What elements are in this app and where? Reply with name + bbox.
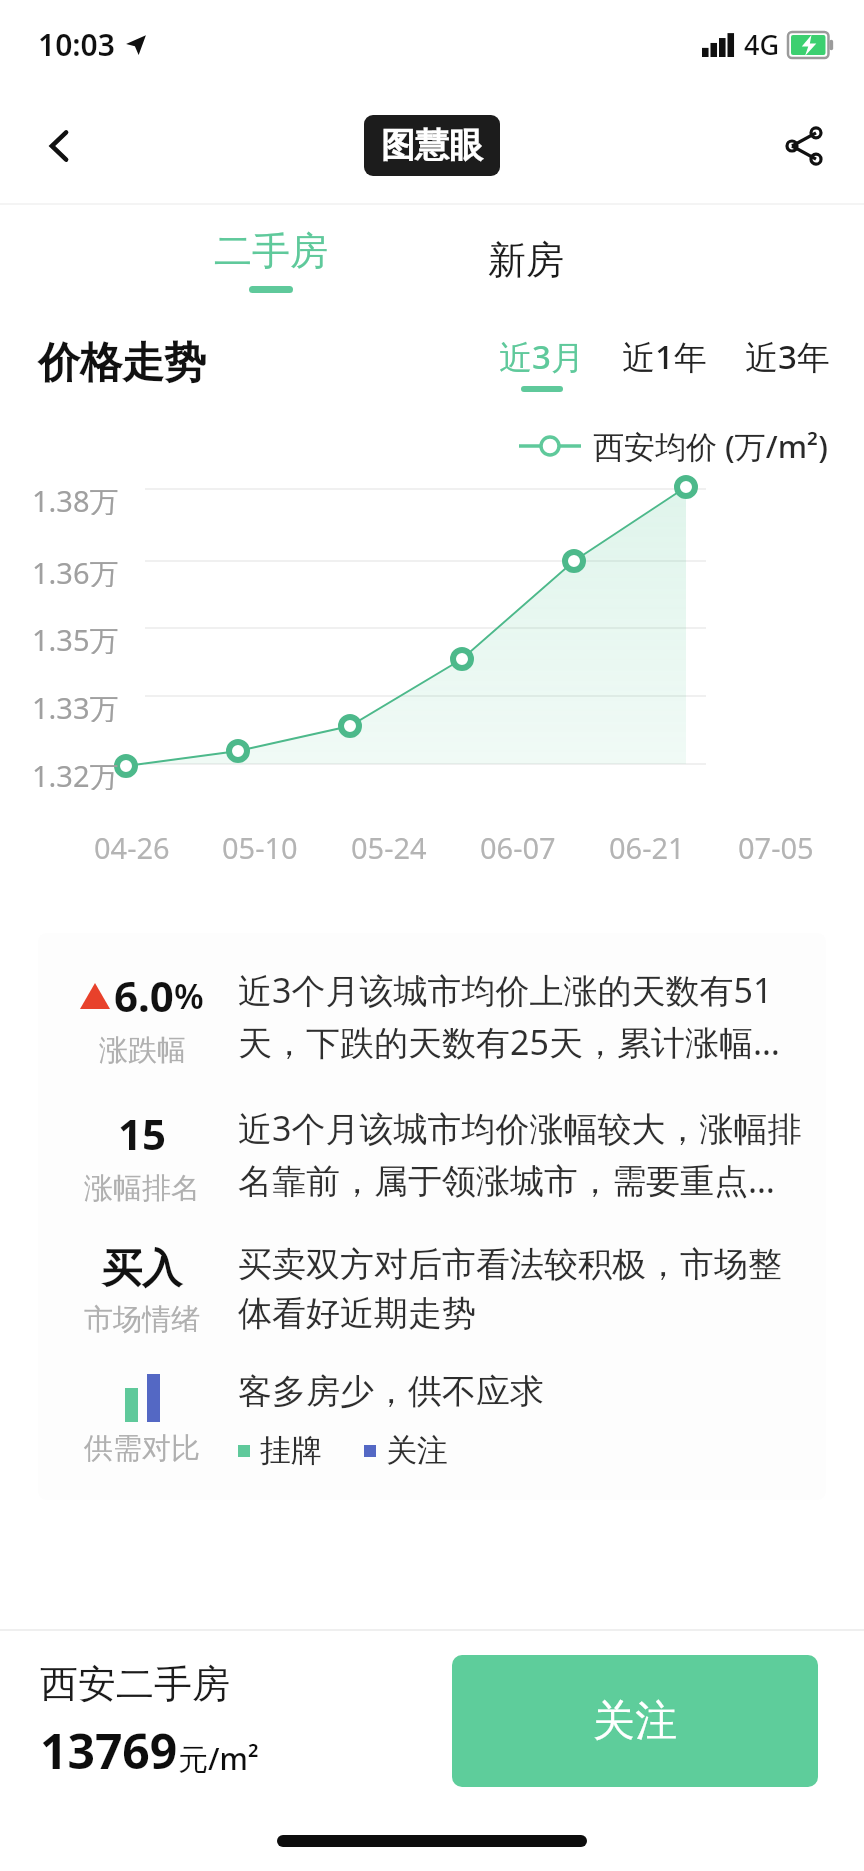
button[interactable]: Back [22, 108, 98, 184]
staticText: 04-26 [94, 828, 170, 867]
staticText: 06-07 [480, 828, 556, 867]
staticText: 6.0 [114, 967, 174, 1024]
staticText: 西安均价 (万/m²) [593, 425, 828, 467]
button[interactable]: 关注 [452, 1655, 818, 1787]
staticText: 客多房少，供不应求 [238, 1370, 544, 1413]
staticText: 近3月 [499, 334, 584, 379]
staticText: 关注 [593, 1695, 677, 1748]
button[interactable]: 图慧眼 [381, 124, 483, 167]
button[interactable]: 新房 [474, 230, 578, 290]
staticText: 涨跌幅 [99, 1032, 186, 1069]
staticText: 1.36万 [32, 553, 119, 587]
button[interactable]: 6.0 [54, 963, 810, 1069]
staticText: % [174, 973, 204, 1019]
staticText: 涨幅排名 [84, 1170, 200, 1207]
staticText: 近3个月该城市均价涨幅较大，涨幅排名靠前，属于领涨城市，需要重点… [238, 1105, 810, 1203]
button[interactable]: 买入 [54, 1239, 810, 1338]
staticText: 关注 [386, 1431, 448, 1470]
staticText: 市场情绪 [84, 1301, 200, 1338]
staticText: 近1年 [622, 334, 707, 379]
button[interactable]: 近3年 [739, 330, 836, 396]
staticText: 近3年 [745, 334, 830, 379]
button[interactable]: 15 [54, 1101, 810, 1207]
staticText: 西安二手房 [40, 1660, 230, 1708]
staticText: 1.35万 [32, 620, 119, 654]
staticText: 近3个月该城市均价上涨的天数有51天，下跌的天数有25天，累计涨幅… [238, 967, 810, 1065]
staticText: 买入 [102, 1243, 182, 1293]
staticText: 05-10 [222, 828, 298, 867]
button[interactable]: 供需对比 [54, 1370, 810, 1470]
staticText: 10:03 [38, 24, 115, 65]
staticText: 1.33万 [32, 688, 119, 722]
staticText: 1.32万 [32, 756, 119, 790]
staticText: 15 [118, 1105, 167, 1162]
staticText: 07-05 [738, 828, 814, 867]
staticText: 13769 [40, 1718, 178, 1783]
staticText: 买卖双方对后市看法较积极，市场整体看好近期走势 [238, 1243, 810, 1335]
staticText: 挂牌 [260, 1431, 322, 1470]
button[interactable]: 二手房 [200, 221, 342, 299]
button[interactable]: 近1年 [616, 330, 713, 396]
staticText: 供需对比 [84, 1430, 200, 1467]
staticText: 1.38万 [32, 481, 119, 515]
staticText: 元/m² [178, 1738, 259, 1779]
staticText: 价格走势 [38, 337, 206, 390]
staticText: 05-24 [351, 828, 427, 867]
button[interactable]: Share [766, 108, 842, 184]
staticText: 图慧眼 [381, 124, 483, 167]
staticText: 二手房 [214, 227, 328, 275]
button[interactable]: 近3月 [493, 330, 590, 396]
staticText: 06-21 [609, 828, 685, 867]
staticText: 新房 [488, 236, 564, 284]
staticText: 4G [744, 26, 780, 63]
